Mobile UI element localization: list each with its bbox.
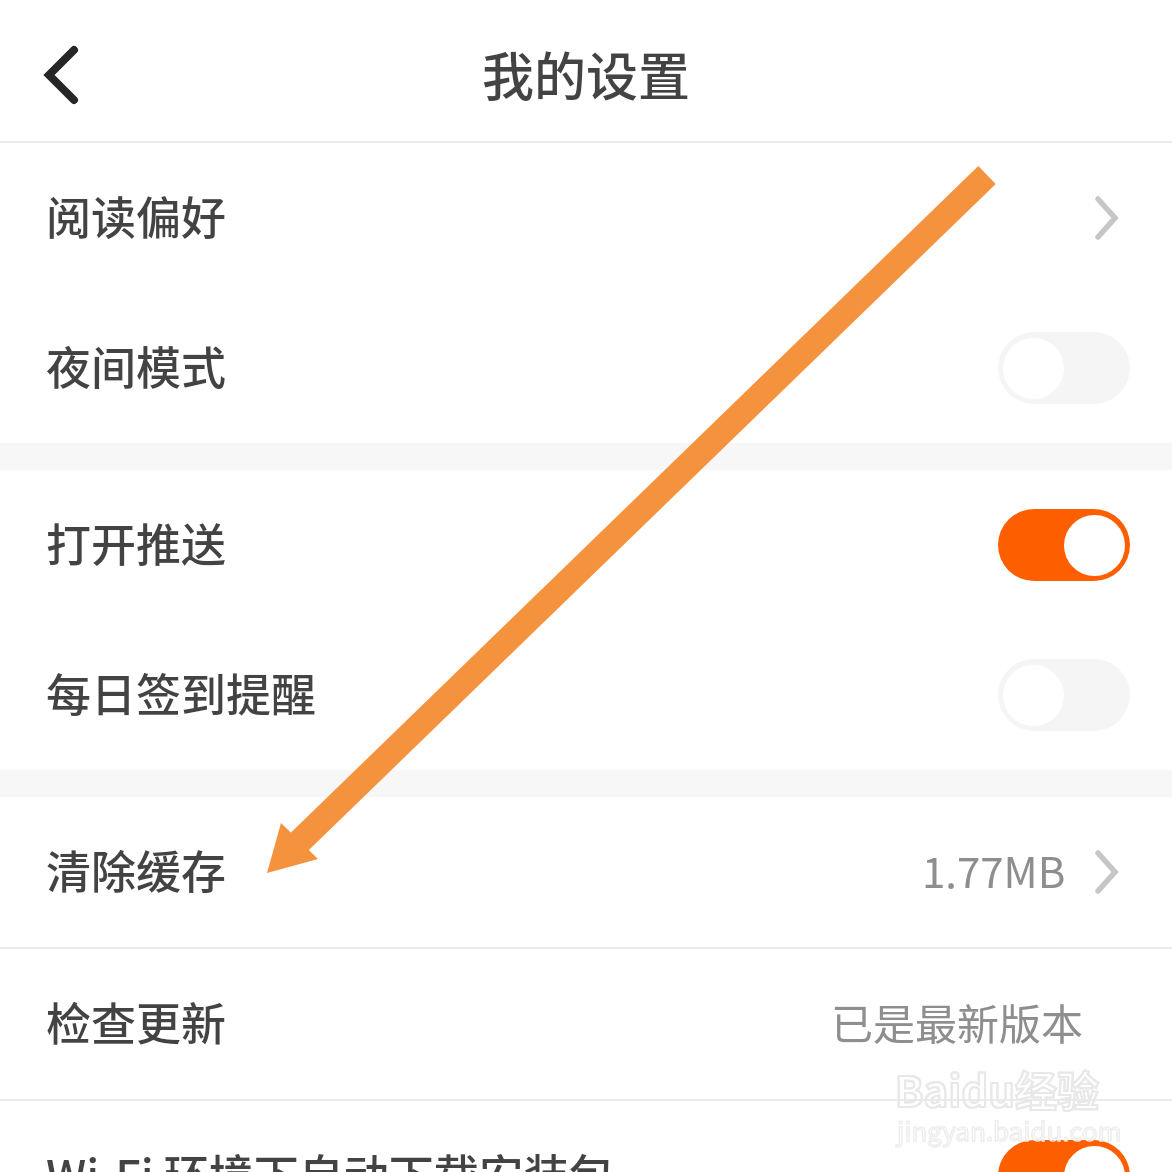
- button[interactable]: Back: [0, 0, 118, 141]
- staticText: 1.77MB: [922, 839, 1066, 900]
- button[interactable]: Switch on: [998, 509, 1130, 581]
- button[interactable]: 清除缓存: [0, 797, 1172, 947]
- staticText: Baidu经验: [895, 1058, 1099, 1119]
- staticText: 阅读偏好: [46, 183, 227, 248]
- button[interactable]: Wi-Fi 环境下自动下载安装包: [0, 1101, 1172, 1172]
- staticText: 打开推送: [46, 510, 227, 575]
- staticText: 已是最新版本: [831, 991, 1084, 1052]
- button[interactable]: 检查更新: [0, 949, 1172, 1099]
- staticText: 夜间模式: [46, 333, 227, 398]
- button[interactable]: Switch off: [998, 659, 1130, 731]
- button[interactable]: 每日签到提醒: [0, 620, 1172, 770]
- staticText: 检查更新: [46, 989, 227, 1054]
- staticText: jingyan.baidu.com: [897, 1111, 1122, 1149]
- button[interactable]: 打开推送: [0, 470, 1172, 620]
- staticText: 清除缓存: [46, 837, 227, 902]
- button[interactable]: Switch on: [998, 1140, 1130, 1172]
- button[interactable]: 阅读偏好: [0, 143, 1172, 293]
- staticText: 我的设置: [482, 36, 691, 111]
- button[interactable]: Switch off: [998, 332, 1130, 404]
- button[interactable]: 夜间模式: [0, 293, 1172, 443]
- staticText: Wi-Fi 环境下自动下载安装包: [46, 1141, 614, 1172]
- staticText: 每日签到提醒: [46, 660, 317, 725]
